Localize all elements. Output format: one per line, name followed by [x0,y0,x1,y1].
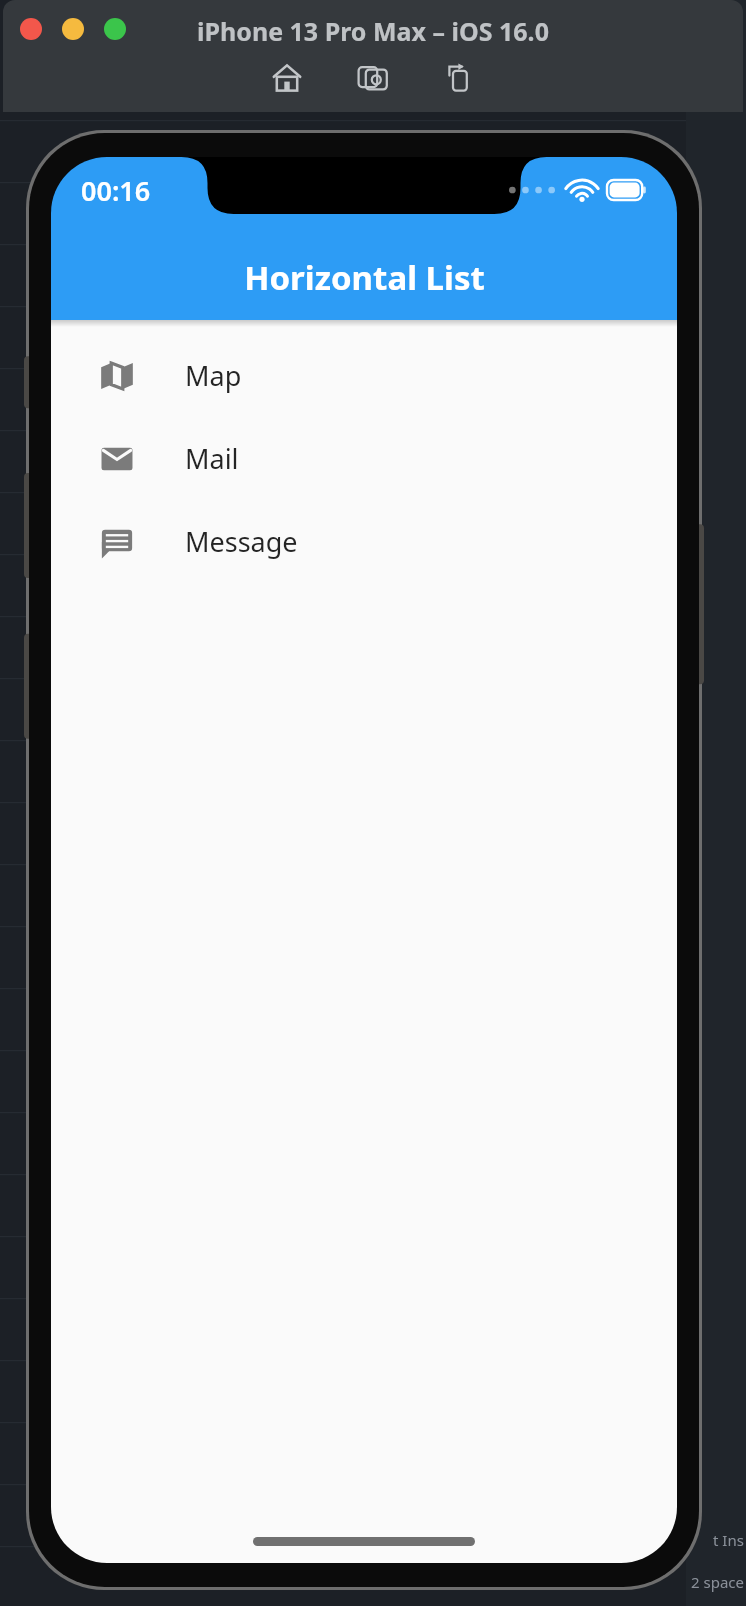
staticText: Message [185,523,298,560]
button[interactable]: Minimize [62,18,84,40]
button[interactable]: Map [51,334,677,417]
button[interactable]: Mail [51,417,677,500]
staticText: Horizontal List [244,255,485,300]
button[interactable]: Home [267,58,307,98]
staticText: Map [185,357,242,394]
staticText: iPhone 13 Pro Max – iOS 16.0 [197,14,549,48]
button[interactable]: Zoom [104,18,126,40]
button[interactable]: Rotate [439,58,479,98]
staticText: t Ins [713,1530,744,1550]
staticText: 2 space [691,1572,744,1592]
button[interactable]: Close [20,18,42,40]
staticText: 00:16 [81,172,151,209]
button[interactable]: Screenshot [353,58,393,98]
staticText: Mail [185,440,239,477]
button[interactable]: Message [51,500,677,583]
